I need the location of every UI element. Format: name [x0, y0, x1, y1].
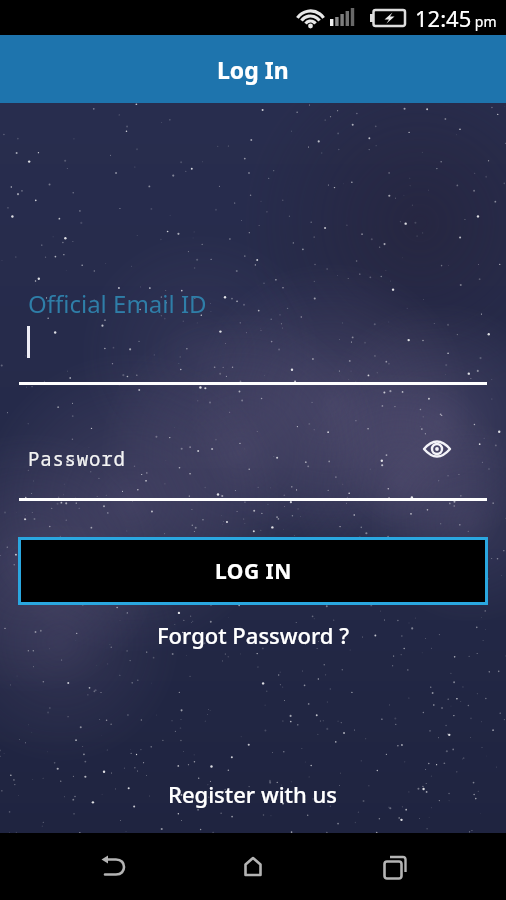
button[interactable] — [382, 854, 408, 880]
staticText: Password — [28, 446, 126, 472]
staticText: Official Email ID — [28, 287, 207, 320]
staticText: Forgot Password ? — [157, 620, 350, 650]
button[interactable]: Register with us — [158, 773, 348, 815]
button[interactable]: LOG IN — [21, 540, 485, 602]
button[interactable] — [241, 855, 265, 879]
staticText: Register with us — [168, 779, 338, 809]
button[interactable]: Forgot Password ? — [147, 614, 360, 656]
staticText: Log In — [217, 54, 289, 85]
staticText: LOG IN — [215, 557, 292, 586]
staticText: 12:45 pm — [415, 3, 497, 33]
button[interactable] — [99, 855, 127, 879]
button[interactable] — [422, 438, 452, 460]
